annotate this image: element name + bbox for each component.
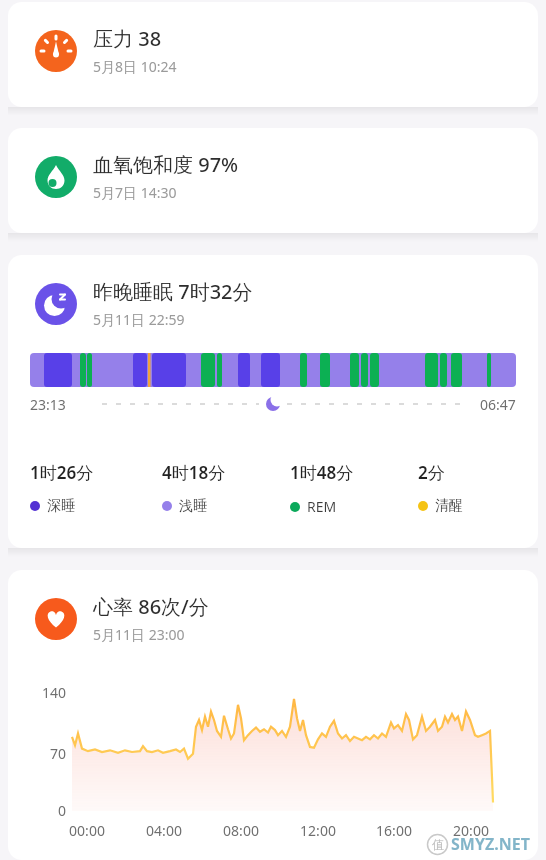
staticText: 06:47 xyxy=(480,395,516,414)
button[interactable]: 昨晚睡眠 7时32分 xyxy=(8,255,538,548)
button[interactable]: 血氧饱和度 97% xyxy=(8,128,538,233)
staticText: 2分 xyxy=(418,461,445,484)
staticText: SMYZ.NET xyxy=(451,833,530,855)
staticText: 5月8日 10:24 xyxy=(93,57,177,76)
staticText: 140 xyxy=(8,683,66,702)
staticText: 20:00 xyxy=(441,821,501,840)
staticText: 0 xyxy=(8,801,66,820)
staticText: 70 xyxy=(8,744,66,763)
staticText: 血氧饱和度 97% xyxy=(93,151,239,178)
staticText: 1时26分 xyxy=(30,461,94,484)
staticText: 浅睡 xyxy=(179,497,207,515)
staticText: 4时18分 xyxy=(162,461,226,484)
staticText: 08:00 xyxy=(211,821,271,840)
button[interactable]: 心率 86次/分 xyxy=(8,570,538,860)
staticText: 昨晚睡眠 7时32分 xyxy=(93,278,253,305)
staticText: 5月11日 23:00 xyxy=(93,625,185,644)
staticText: 压力 38 xyxy=(93,25,162,52)
staticText: 值 xyxy=(432,837,444,852)
staticText: 16:00 xyxy=(364,821,424,840)
staticText: 5月11日 22:59 xyxy=(93,310,185,329)
staticText: 清醒 xyxy=(435,497,463,515)
staticText: 12:00 xyxy=(288,821,348,840)
staticText: 5月7日 14:30 xyxy=(93,183,177,202)
staticText: 深睡 xyxy=(47,497,75,515)
staticText: REM xyxy=(307,497,337,516)
staticText: 1时48分 xyxy=(290,461,354,484)
staticText: 00:00 xyxy=(57,821,117,840)
staticText: 04:00 xyxy=(134,821,194,840)
button[interactable]: 压力 38 xyxy=(8,2,538,107)
staticText: 心率 86次/分 xyxy=(93,593,209,620)
staticText: 23:13 xyxy=(30,395,66,414)
